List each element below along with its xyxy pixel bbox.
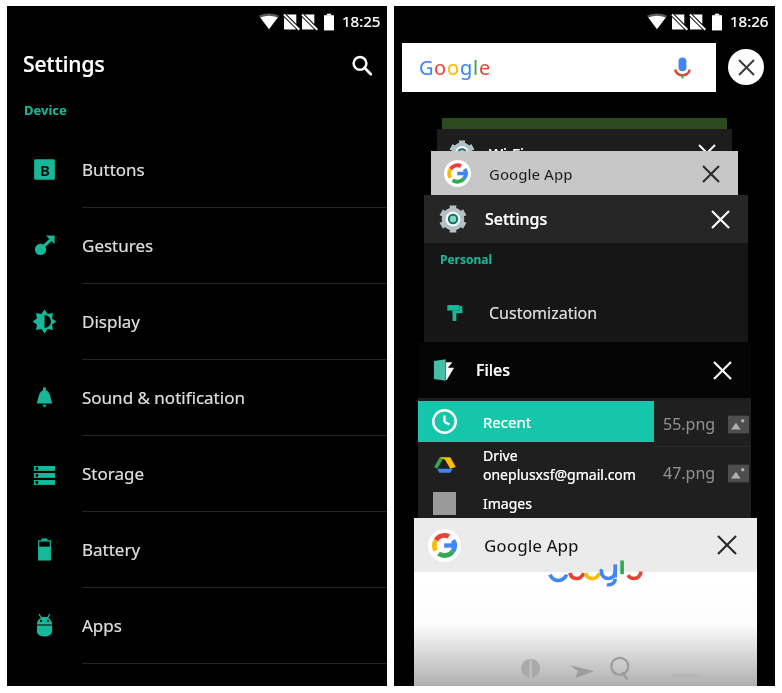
other: Voice search	[671, 56, 694, 79]
button[interactable]: Gestures	[7, 208, 387, 284]
staticText: Battery	[82, 538, 141, 561]
staticText: Wi-Fi	[489, 143, 524, 163]
button[interactable]: Display	[7, 284, 387, 360]
button[interactable]: Files	[418, 342, 751, 519]
staticText: B	[40, 160, 50, 180]
staticText: 47.png	[663, 462, 716, 484]
staticText: l	[473, 54, 479, 81]
staticText: Google App	[484, 534, 579, 557]
staticText: Files	[476, 359, 511, 381]
staticText: Gestures	[82, 234, 154, 257]
button[interactable]: Google App	[414, 518, 757, 686]
other: Close Google App	[718, 536, 736, 554]
staticText: Buttons	[82, 158, 145, 181]
button[interactable]: Recent	[418, 401, 654, 442]
button[interactable]: Sound & notification	[7, 360, 387, 436]
staticText: 18:26	[730, 11, 769, 31]
other: Close Google App	[703, 166, 719, 182]
staticText: oneplusxsf@gmail.com	[483, 465, 636, 484]
staticText: Display	[82, 310, 140, 333]
staticText: 18:25	[342, 11, 381, 31]
staticText: Recent	[483, 412, 532, 432]
other: Close Settings	[712, 211, 729, 228]
staticText: Drive	[483, 446, 518, 465]
staticText: G	[419, 54, 434, 81]
staticText: e	[479, 54, 491, 81]
button[interactable]: Apps	[7, 588, 387, 664]
staticText: Sound & notification	[82, 386, 245, 409]
staticText: Settings	[23, 50, 105, 79]
staticText: o	[447, 54, 460, 81]
staticText: g	[460, 54, 473, 81]
staticText: o	[434, 54, 447, 81]
staticText: Device	[24, 101, 67, 119]
staticText: Apps	[82, 614, 122, 637]
staticText: Google App	[489, 164, 573, 184]
button[interactable]: Storage	[7, 436, 387, 512]
button[interactable]: Close all	[728, 49, 764, 85]
button[interactable]: G	[402, 43, 716, 92]
staticText: Customization	[489, 302, 598, 324]
staticText: Storage	[82, 462, 145, 485]
other: Close Files	[714, 362, 731, 379]
staticText: Settings	[485, 208, 548, 230]
button[interactable]: Settings	[424, 195, 748, 346]
button[interactable]: B	[7, 132, 387, 208]
staticText: Images	[483, 494, 532, 513]
button[interactable]: Search	[343, 46, 377, 80]
staticText: Personal	[440, 251, 493, 267]
button[interactable]: Drive	[418, 442, 654, 488]
button[interactable]: Battery	[7, 512, 387, 588]
button[interactable]: Google App	[431, 151, 738, 196]
staticText: 55.png	[663, 413, 716, 435]
